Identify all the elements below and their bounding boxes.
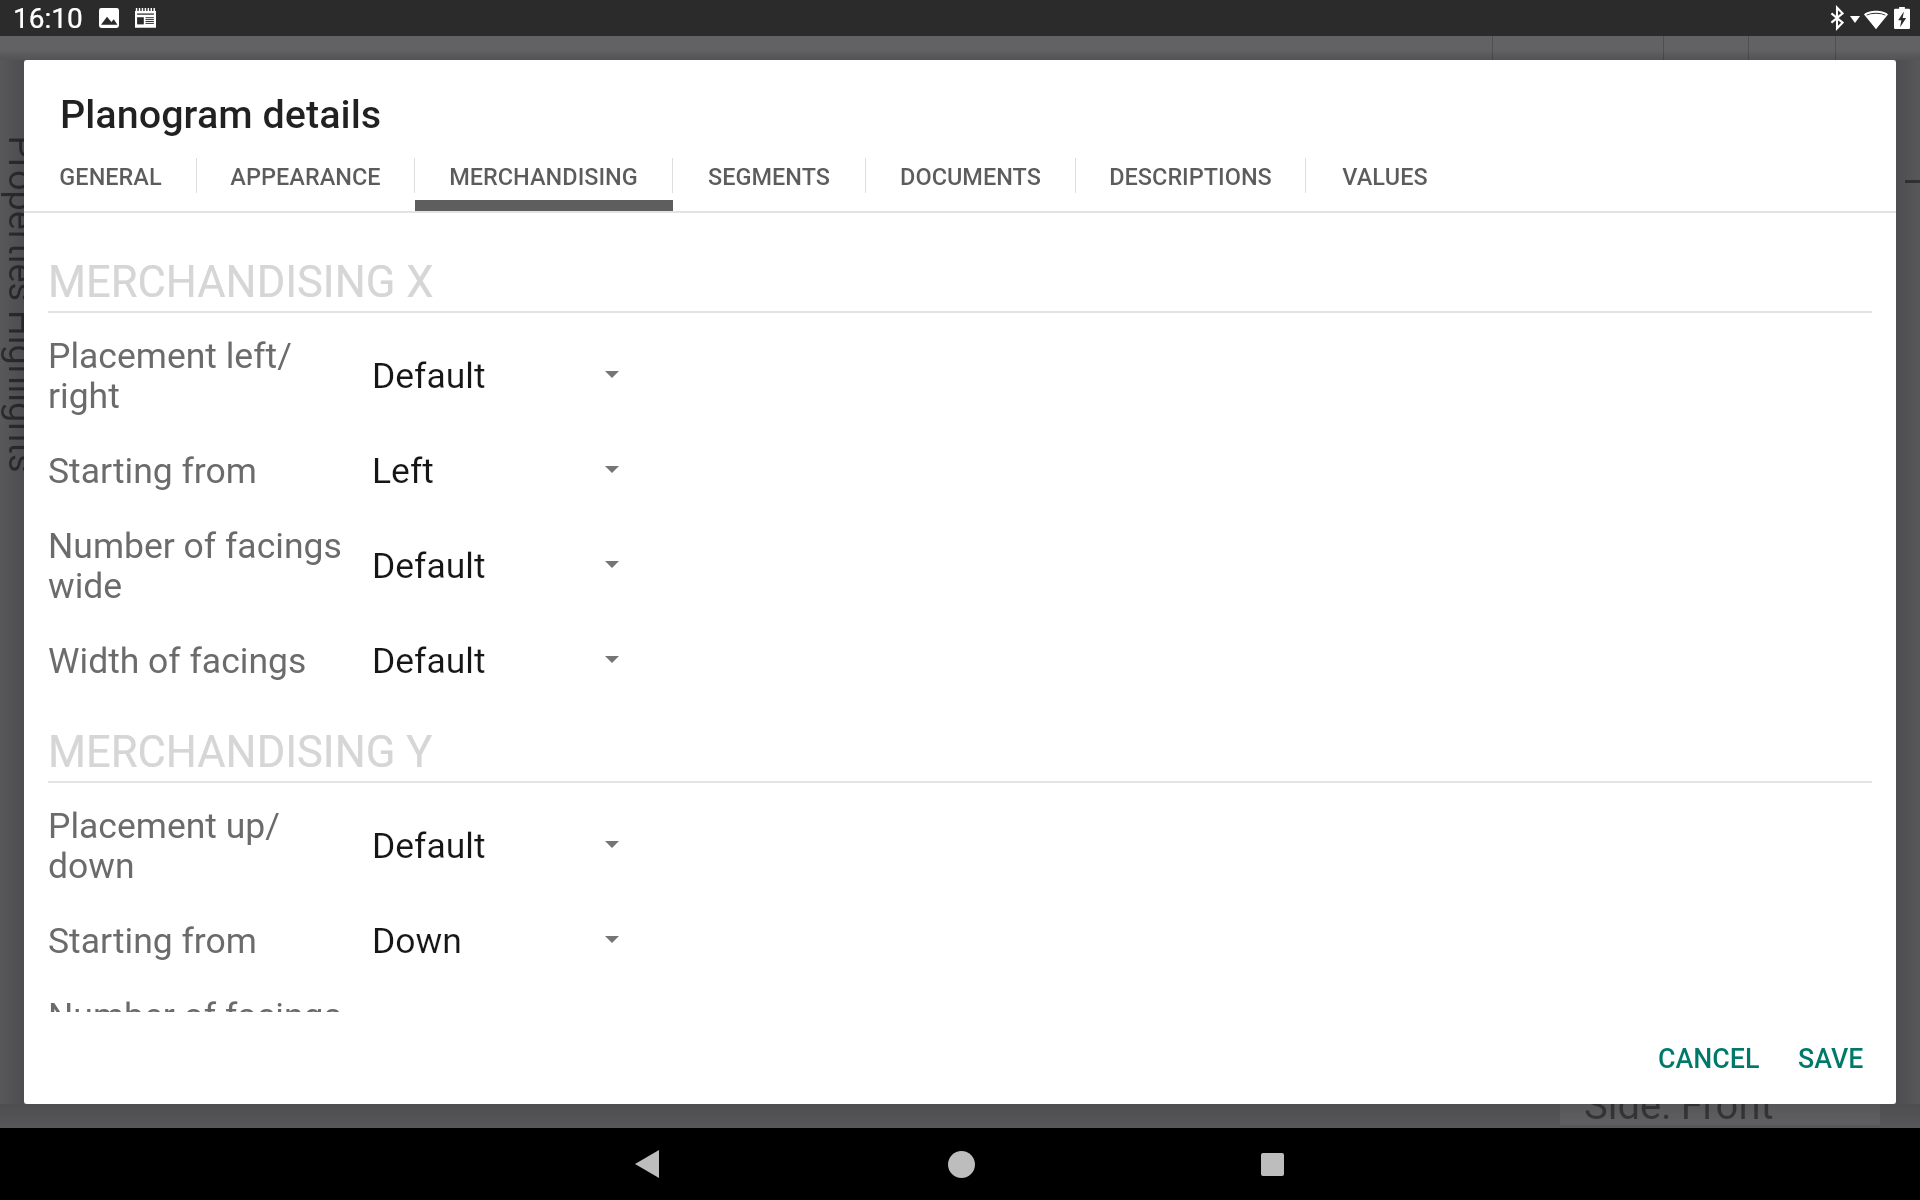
staticText: Starting from [48,920,372,962]
button[interactable]: Default [372,618,605,693]
staticText: Width of facings [48,640,372,682]
staticText: SAVE [1798,1043,1864,1074]
staticText: Left [372,450,434,492]
button[interactable]: Down [372,898,605,973]
button[interactable]: VALUES [1305,158,1464,212]
staticText: Default [372,825,486,867]
staticText: Number of facings high [48,995,372,1012]
button[interactable]: Home [921,1128,1001,1200]
button[interactable]: DESCRIPTIONS [1075,158,1305,212]
button[interactable]: APPEARANCE [196,158,414,212]
staticText: VALUES [1342,163,1428,191]
button[interactable]: Left [372,428,605,503]
staticText: Default [372,355,486,397]
staticText: MERCHANDISING Y [48,727,433,778]
staticText: Down [372,920,462,962]
staticText: APPEARANCE [230,163,381,191]
button[interactable]: DOCUMENTS [865,158,1075,212]
button[interactable]: Back [607,1128,687,1200]
button[interactable]: SAVE [1779,1025,1883,1092]
staticText: Default [372,545,486,587]
staticText: SEGMENTS [708,163,830,191]
staticText: Placement left/ right [48,335,372,416]
staticText: 16:10 [13,2,83,35]
staticText: Default [372,640,486,682]
staticText: Number of facings wide [48,525,372,606]
button[interactable]: CANCEL [1639,1025,1779,1092]
button[interactable]: Default [372,313,605,428]
staticText: Properties Highlights [0,135,41,472]
staticText: Placement up/ down [48,805,372,886]
button[interactable]: MERCHANDISING [414,158,672,212]
staticText: Side: Front [1584,1082,1774,1129]
staticText: MERCHANDISING X [48,257,434,308]
button[interactable]: SEGMENTS [672,158,865,212]
staticText: CANCEL [1658,1043,1760,1074]
staticText: DESCRIPTIONS [1109,163,1272,191]
staticText: Starting from [48,450,372,492]
button[interactable]: Default [372,503,605,618]
staticText: MERCHANDISING [449,163,638,191]
button[interactable]: Default [372,783,605,898]
staticText: GENERAL [59,163,162,191]
button[interactable]: GENERAL [24,158,196,212]
staticText: Planogram details [60,91,382,137]
button[interactable]: Recent apps [1232,1128,1312,1200]
staticText: DOCUMENTS [900,163,1041,191]
